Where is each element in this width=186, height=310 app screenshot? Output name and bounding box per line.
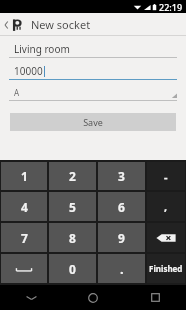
staticText: New socket [31, 17, 91, 32]
staticText: A [14, 87, 20, 98]
staticText: 10000 [14, 64, 43, 78]
button[interactable]: Navigate up [2, 13, 27, 36]
button[interactable]: . [98, 254, 145, 283]
staticText: 2 [69, 168, 76, 184]
staticText: - [164, 169, 168, 184]
staticText: , [164, 199, 168, 214]
button[interactable]: 0 [49, 254, 96, 283]
staticText: 1 [21, 168, 28, 184]
button[interactable]: Space [1, 254, 47, 283]
button[interactable]: 7 [1, 223, 47, 252]
button[interactable]: Hide keyboard [0, 285, 62, 310]
staticText: 22:19 [159, 1, 183, 13]
staticText: . [120, 260, 124, 278]
staticText: 4 [21, 199, 28, 215]
button[interactable]: 10000 [9, 62, 177, 80]
staticText: 5 [69, 199, 76, 215]
button[interactable]: 9 [98, 223, 145, 252]
staticText: 7 [21, 230, 28, 246]
button[interactable]: Backspace [147, 223, 185, 252]
button[interactable]: 1 [1, 162, 47, 190]
staticText: Save [83, 116, 103, 128]
button[interactable]: 2 [49, 162, 96, 190]
staticText: 6 [118, 199, 125, 215]
staticText: Living room [14, 42, 70, 56]
staticText: 0 [69, 261, 76, 277]
button[interactable]: 8 [49, 223, 96, 252]
button[interactable]: Living room [9, 40, 177, 58]
button[interactable]: 3 [98, 162, 145, 190]
button[interactable]: Home [62, 285, 124, 310]
staticText: 3 [118, 168, 125, 184]
button[interactable]: 4 [1, 192, 47, 221]
staticText: Finished [149, 263, 183, 274]
staticText: 8 [69, 230, 76, 246]
button[interactable]: A [9, 84, 177, 101]
button[interactable]: Save [10, 113, 176, 131]
button[interactable]: Minus [147, 162, 185, 190]
button[interactable]: Recent apps [124, 285, 186, 310]
staticText: 9 [118, 230, 125, 246]
button[interactable]: Comma [147, 192, 185, 221]
button[interactable]: 5 [49, 192, 96, 221]
button[interactable]: Finished [147, 254, 185, 283]
button[interactable]: 6 [98, 192, 145, 221]
